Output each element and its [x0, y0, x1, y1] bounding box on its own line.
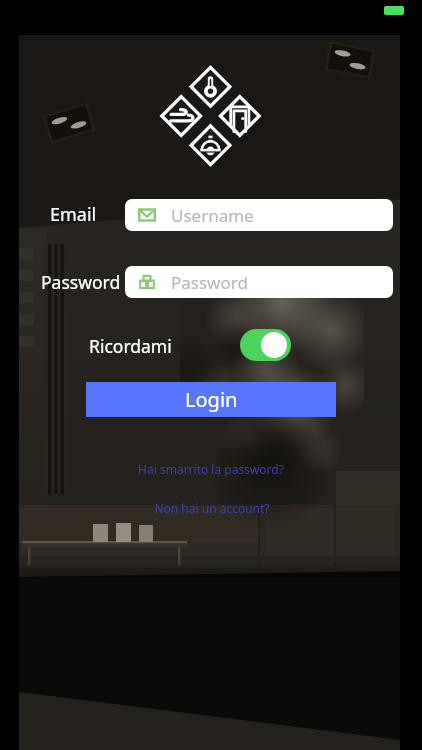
button[interactable]: Password [125, 266, 393, 298]
button[interactable]: Hai smarrito la password? [0, 461, 422, 479]
button[interactable]: Username [125, 199, 393, 231]
staticText: Ricordami [89, 334, 172, 358]
staticText: Email [50, 202, 97, 227]
button[interactable]: Ricordami [240, 329, 291, 361]
staticText: Hai smarrito la password? [0, 461, 422, 477]
staticText: Non hai un account? [1, 500, 422, 516]
staticText: Password [171, 271, 248, 294]
button[interactable]: Login [86, 382, 336, 417]
staticText: Login [185, 386, 238, 413]
staticText: Password [41, 270, 121, 294]
staticText: Username [171, 204, 254, 227]
button[interactable]: Non hai un account? [1, 500, 422, 518]
